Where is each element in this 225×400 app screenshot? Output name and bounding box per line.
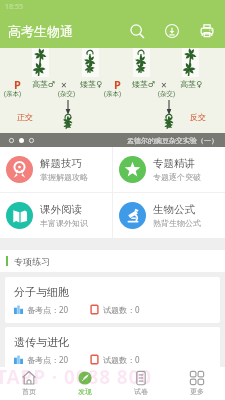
button[interactable]: 更多 xyxy=(169,367,225,400)
staticText: (亲本) xyxy=(4,89,21,98)
button[interactable]: 课外阅读 xyxy=(0,193,112,238)
staticText: 18:55 xyxy=(5,2,23,12)
staticText: 反交 xyxy=(190,112,206,122)
button[interactable]: 专题精讲 xyxy=(113,147,225,192)
staticText: 高茎♀ xyxy=(180,79,202,89)
button[interactable]: 试卷 xyxy=(113,367,169,400)
staticText: 矮茎♀ xyxy=(80,79,102,89)
staticText: 备考点：20 xyxy=(27,354,69,365)
staticText: 分子与细胞 xyxy=(14,285,69,299)
staticText: 解题技巧 xyxy=(40,157,82,170)
staticText: 试题数：0 xyxy=(103,304,140,315)
staticText: (杂交) xyxy=(158,89,175,98)
staticText: (亲本) xyxy=(104,89,121,98)
staticText: 专项练习 xyxy=(14,256,50,267)
staticText: 发现 xyxy=(78,387,92,396)
staticText: 更多 xyxy=(190,387,204,396)
staticText: × xyxy=(161,78,167,92)
button[interactable]: 遗传与进化 xyxy=(5,327,220,373)
staticText: (杂交) xyxy=(58,89,75,98)
staticText: 掌握解题攻略 xyxy=(40,172,88,182)
staticText: 高茎♂ xyxy=(32,79,56,89)
button[interactable]: 生物公式 xyxy=(113,193,225,238)
button[interactable]: 首页 xyxy=(0,367,57,400)
staticText: 丰富课外知识 xyxy=(40,218,88,228)
staticText: 首页 xyxy=(22,387,36,396)
staticText: P xyxy=(114,77,121,92)
staticText: 生物公式 xyxy=(153,203,195,216)
staticText: 专题精讲 xyxy=(153,157,195,170)
button[interactable]: Search xyxy=(120,14,154,48)
staticText: 课外阅读 xyxy=(40,203,82,216)
button[interactable]: Download xyxy=(155,14,189,48)
staticText: 试卷 xyxy=(134,387,148,396)
staticText: P xyxy=(14,77,21,92)
staticText: 熟背生物公式 xyxy=(153,218,201,228)
staticText: 专题逐个突破 xyxy=(153,172,201,182)
staticText: 矮茎♂ xyxy=(132,79,156,89)
staticText: 高考生物通 xyxy=(8,23,73,39)
button[interactable]: 解题技巧 xyxy=(0,147,112,192)
staticText: 遗传与进化 xyxy=(14,335,69,349)
button[interactable]: 发现 xyxy=(57,367,113,400)
staticText: 备考点：20 xyxy=(27,304,69,315)
button[interactable]: Print xyxy=(190,14,224,48)
staticText: 试题数：0 xyxy=(103,354,140,365)
staticText: × xyxy=(61,78,67,92)
button[interactable]: 分子与细胞 xyxy=(5,277,220,323)
staticText: TAPP · 0088 800 xyxy=(0,364,153,390)
staticText: 正交 xyxy=(17,112,33,122)
staticText: 孟德尔的豌豆杂交实验（一） xyxy=(127,136,218,145)
